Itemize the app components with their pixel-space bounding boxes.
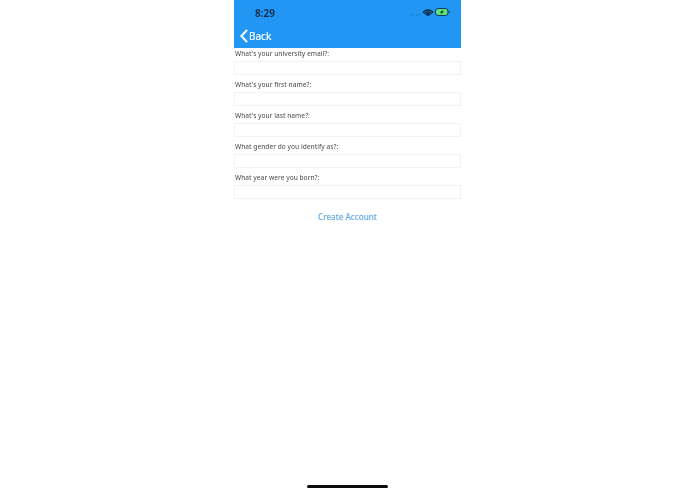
- button[interactable]: Back: [238, 28, 274, 44]
- button[interactable]: What year were you born?:: [234, 185, 461, 199]
- staticText: 8:29: [255, 6, 275, 20]
- button[interactable]: Create Account: [234, 208, 461, 224]
- button[interactable]: What's your first name?:: [234, 92, 461, 106]
- staticText: What's your last name?:: [235, 111, 310, 120]
- button[interactable]: What gender do you identify as?:: [234, 154, 461, 168]
- button[interactable]: What's your last name?:: [234, 123, 461, 137]
- staticText: Back: [249, 29, 272, 43]
- staticText: Create Account: [318, 211, 377, 222]
- staticText: What gender do you identify as?:: [235, 142, 339, 151]
- staticText: What year were you born?:: [235, 173, 320, 182]
- staticText: What's your university email?:: [235, 49, 330, 58]
- staticText: What's your first name?:: [235, 80, 312, 89]
- button[interactable]: What's your university email?:: [234, 61, 461, 75]
